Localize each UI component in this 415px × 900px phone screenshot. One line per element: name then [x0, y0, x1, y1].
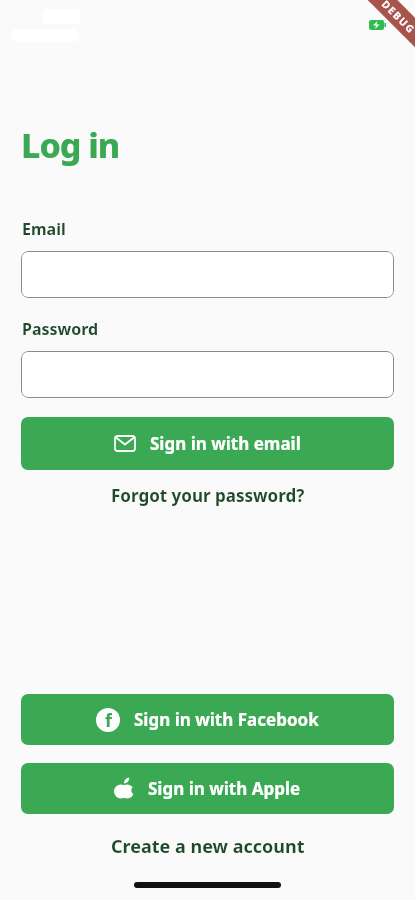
button[interactable]: f: [21, 694, 394, 745]
staticText: Sign in with Facebook: [134, 708, 319, 731]
button[interactable]: Sign in with Apple: [21, 763, 394, 814]
button[interactable]: [21, 251, 394, 298]
button[interactable]: [21, 351, 394, 398]
staticText: Password: [22, 318, 99, 340]
staticText: Log in: [21, 122, 120, 168]
staticText: Sign in with email: [150, 432, 301, 455]
staticText: Email: [22, 218, 66, 240]
staticText: f: [105, 708, 112, 732]
button[interactable]: Sign in with email: [21, 417, 394, 470]
button[interactable]: Create a new account: [111, 834, 305, 859]
staticText: Sign in with Apple: [148, 777, 301, 800]
staticText: DEBUG: [379, 0, 415, 37]
button[interactable]: Forgot your password?: [111, 484, 305, 507]
